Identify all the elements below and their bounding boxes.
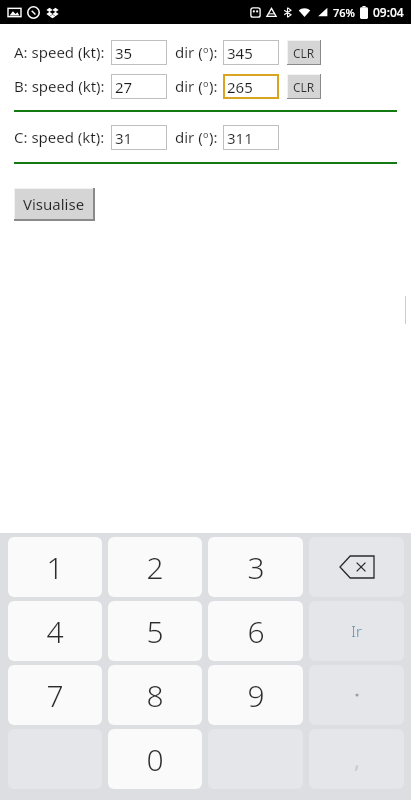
staticText: o [203,77,209,89]
staticText: 27 [115,77,133,97]
button[interactable]: 2 [108,537,202,597]
button[interactable]: 4 [8,601,102,661]
button[interactable]: 27 [111,74,167,99]
staticText: CLR [293,45,315,61]
button[interactable]: 0 [108,729,202,789]
staticText: 7 [46,675,64,716]
staticText: Ir [351,621,362,641]
staticText: 3 [247,547,265,588]
staticText: o [203,43,209,55]
staticText: o [203,128,209,140]
staticText: 35 [115,43,133,63]
staticText: Visualise [23,194,85,214]
button[interactable]: 31 [111,125,167,150]
staticText: dir ( [175,127,203,147]
button[interactable]: 7 [8,665,102,725]
staticText: dir ( [175,42,203,62]
button[interactable]: CLR [288,41,320,64]
staticText: 0 [146,739,164,780]
staticText: 5 [146,611,164,652]
staticText: 31 [115,128,133,148]
button[interactable]: 1 [8,537,102,597]
staticText: ): [209,42,218,62]
staticText: C: speed (kt): [14,127,105,147]
staticText: ): [209,76,218,96]
staticText: ): [209,127,218,147]
staticText: 265 [227,77,253,97]
button[interactable]: Visualise [15,189,93,219]
staticText: 4 [46,611,64,652]
staticText: 345 [227,43,253,63]
button[interactable]: 9 [208,665,303,725]
button[interactable]: 6 [208,601,303,661]
button[interactable]: CLR [288,75,320,98]
staticText: 6 [247,611,265,652]
staticText: 9 [247,675,265,716]
button[interactable]: 311 [223,125,279,150]
staticText: , [354,744,360,774]
button[interactable]: 35 [111,40,167,65]
staticText: A: speed (kt): [14,42,105,62]
staticText: dir ( [175,76,203,96]
staticText: CLR [293,79,315,95]
staticText: 1 [46,547,64,588]
staticText: 09:04 [373,4,404,20]
button[interactable]: Backspace [309,537,404,597]
button[interactable]: 345 [223,40,279,65]
button[interactable]: 265 [223,74,279,99]
staticText: 2 [146,547,164,588]
button[interactable]: 3 [208,537,303,597]
staticText: 8 [146,675,164,716]
button[interactable]: 5 [108,601,202,661]
staticText: 311 [227,128,253,148]
staticText: 76% [333,5,355,20]
staticText: B: speed (kt): [14,76,105,96]
button[interactable]: 8 [108,665,202,725]
button[interactable]: Ir [309,601,404,661]
